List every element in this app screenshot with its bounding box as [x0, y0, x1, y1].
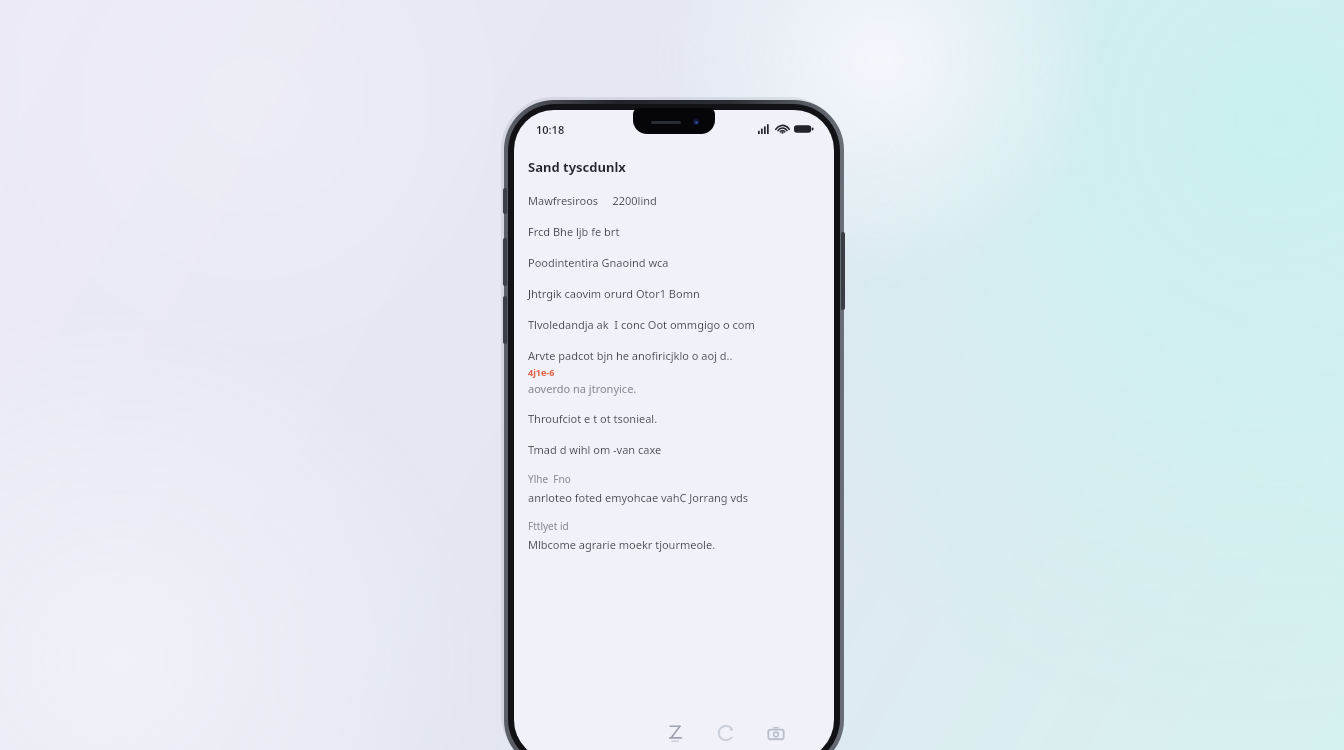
staticText: Mlbcome agrarie moekr tjourmeole.	[528, 537, 716, 552]
button[interactable]: Jhtrgik caovim orurd Otor1 Bomn	[528, 286, 820, 301]
button[interactable]: 4j1e-6	[528, 366, 820, 378]
staticText: 4j1e-6	[528, 366, 555, 378]
staticText: Arvte padcot bjn he anofiricjklo o aoj d…	[528, 348, 733, 363]
button[interactable]: aoverdo na jtronyice.	[528, 381, 820, 396]
staticText: Tmad d wihl om -van caxe	[528, 442, 662, 457]
button[interactable]: Print	[659, 716, 693, 750]
button[interactable]: Arvte padcot bjn he anofiricjklo o aoj d…	[528, 348, 820, 363]
button[interactable]: Fttlyet id	[528, 519, 820, 533]
staticText: Frcd Bhe ljb fe brt	[528, 224, 620, 239]
staticText: 10:18	[536, 122, 565, 137]
button[interactable]: Refresh	[709, 716, 743, 750]
button[interactable]: Throufciot e t ot tsonieal.	[528, 411, 820, 426]
button[interactable]: Camera	[759, 716, 793, 750]
staticText: aoverdo na jtronyice.	[528, 381, 637, 396]
button[interactable]: Ylhe Fno	[528, 472, 820, 486]
button[interactable]: Frcd Bhe ljb fe brt	[528, 224, 820, 239]
button[interactable]: Mawfresiroos 2200lind	[528, 193, 820, 208]
button[interactable]: Poodintentira Gnaoind wca	[528, 255, 820, 270]
staticText: Sand tyscdunlx	[528, 158, 626, 176]
button[interactable]: Sand tyscdunlx	[528, 158, 820, 176]
button[interactable]: Tlvoledandja ak I conc Oot ommgigo o com	[528, 317, 820, 332]
staticText: Throufciot e t ot tsonieal.	[528, 411, 658, 426]
staticText: Ylhe Fno	[528, 472, 571, 486]
button[interactable]: Tmad d wihl om -van caxe	[528, 442, 820, 457]
staticText: Jhtrgik caovim orurd Otor1 Bomn	[528, 286, 700, 301]
button[interactable]: Mlbcome agrarie moekr tjourmeole.	[528, 537, 820, 552]
button[interactable]: anrloteo foted emyohcae vahC Jorrang vds	[528, 490, 820, 505]
staticText: Tlvoledandja ak I conc Oot ommgigo o com	[528, 317, 755, 332]
staticText: Poodintentira Gnaoind wca	[528, 255, 669, 270]
staticText: anrloteo foted emyohcae vahC Jorrang vds	[528, 490, 749, 505]
staticText: Fttlyet id	[528, 519, 569, 533]
staticText: Mawfresiroos 2200lind	[528, 193, 657, 208]
